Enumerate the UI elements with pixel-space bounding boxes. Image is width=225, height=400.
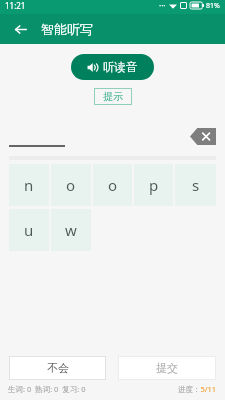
button[interactable]: Back (9, 18, 31, 40)
button[interactable]: 提示 (94, 88, 132, 105)
button[interactable]: o (93, 164, 132, 206)
staticText: 不会 (47, 361, 69, 375)
staticText: p (149, 175, 159, 195)
staticText: 提示 (103, 90, 123, 103)
staticText: 智能听写 (41, 21, 93, 37)
staticText: 81% (206, 1, 220, 11)
staticText: ··· (159, 0, 166, 11)
staticText: s (192, 175, 200, 195)
button[interactable]: Backspace (190, 128, 216, 145)
button[interactable]: 不会 (9, 356, 106, 380)
button[interactable]: o (51, 164, 91, 206)
button[interactable]: 提交 (118, 356, 216, 380)
staticText: 听读音 (103, 60, 138, 74)
button[interactable]: p (134, 164, 173, 206)
button[interactable]: u (9, 209, 49, 251)
button[interactable]: 听读音 (71, 54, 154, 80)
staticText: 进度：5/11 (178, 384, 217, 394)
staticText: 生词: 0 熟词: 0 复习: 0 (8, 384, 86, 394)
staticText: o (66, 175, 76, 195)
button[interactable]: s (175, 164, 216, 206)
button[interactable]: w (51, 209, 91, 251)
staticText: w (65, 220, 77, 240)
staticText: u (24, 220, 34, 240)
staticText: n (24, 175, 34, 195)
staticText: o (108, 175, 118, 195)
staticText: 提交 (156, 361, 178, 375)
staticText: 11:21 (5, 0, 26, 11)
button[interactable]: n (9, 164, 49, 206)
